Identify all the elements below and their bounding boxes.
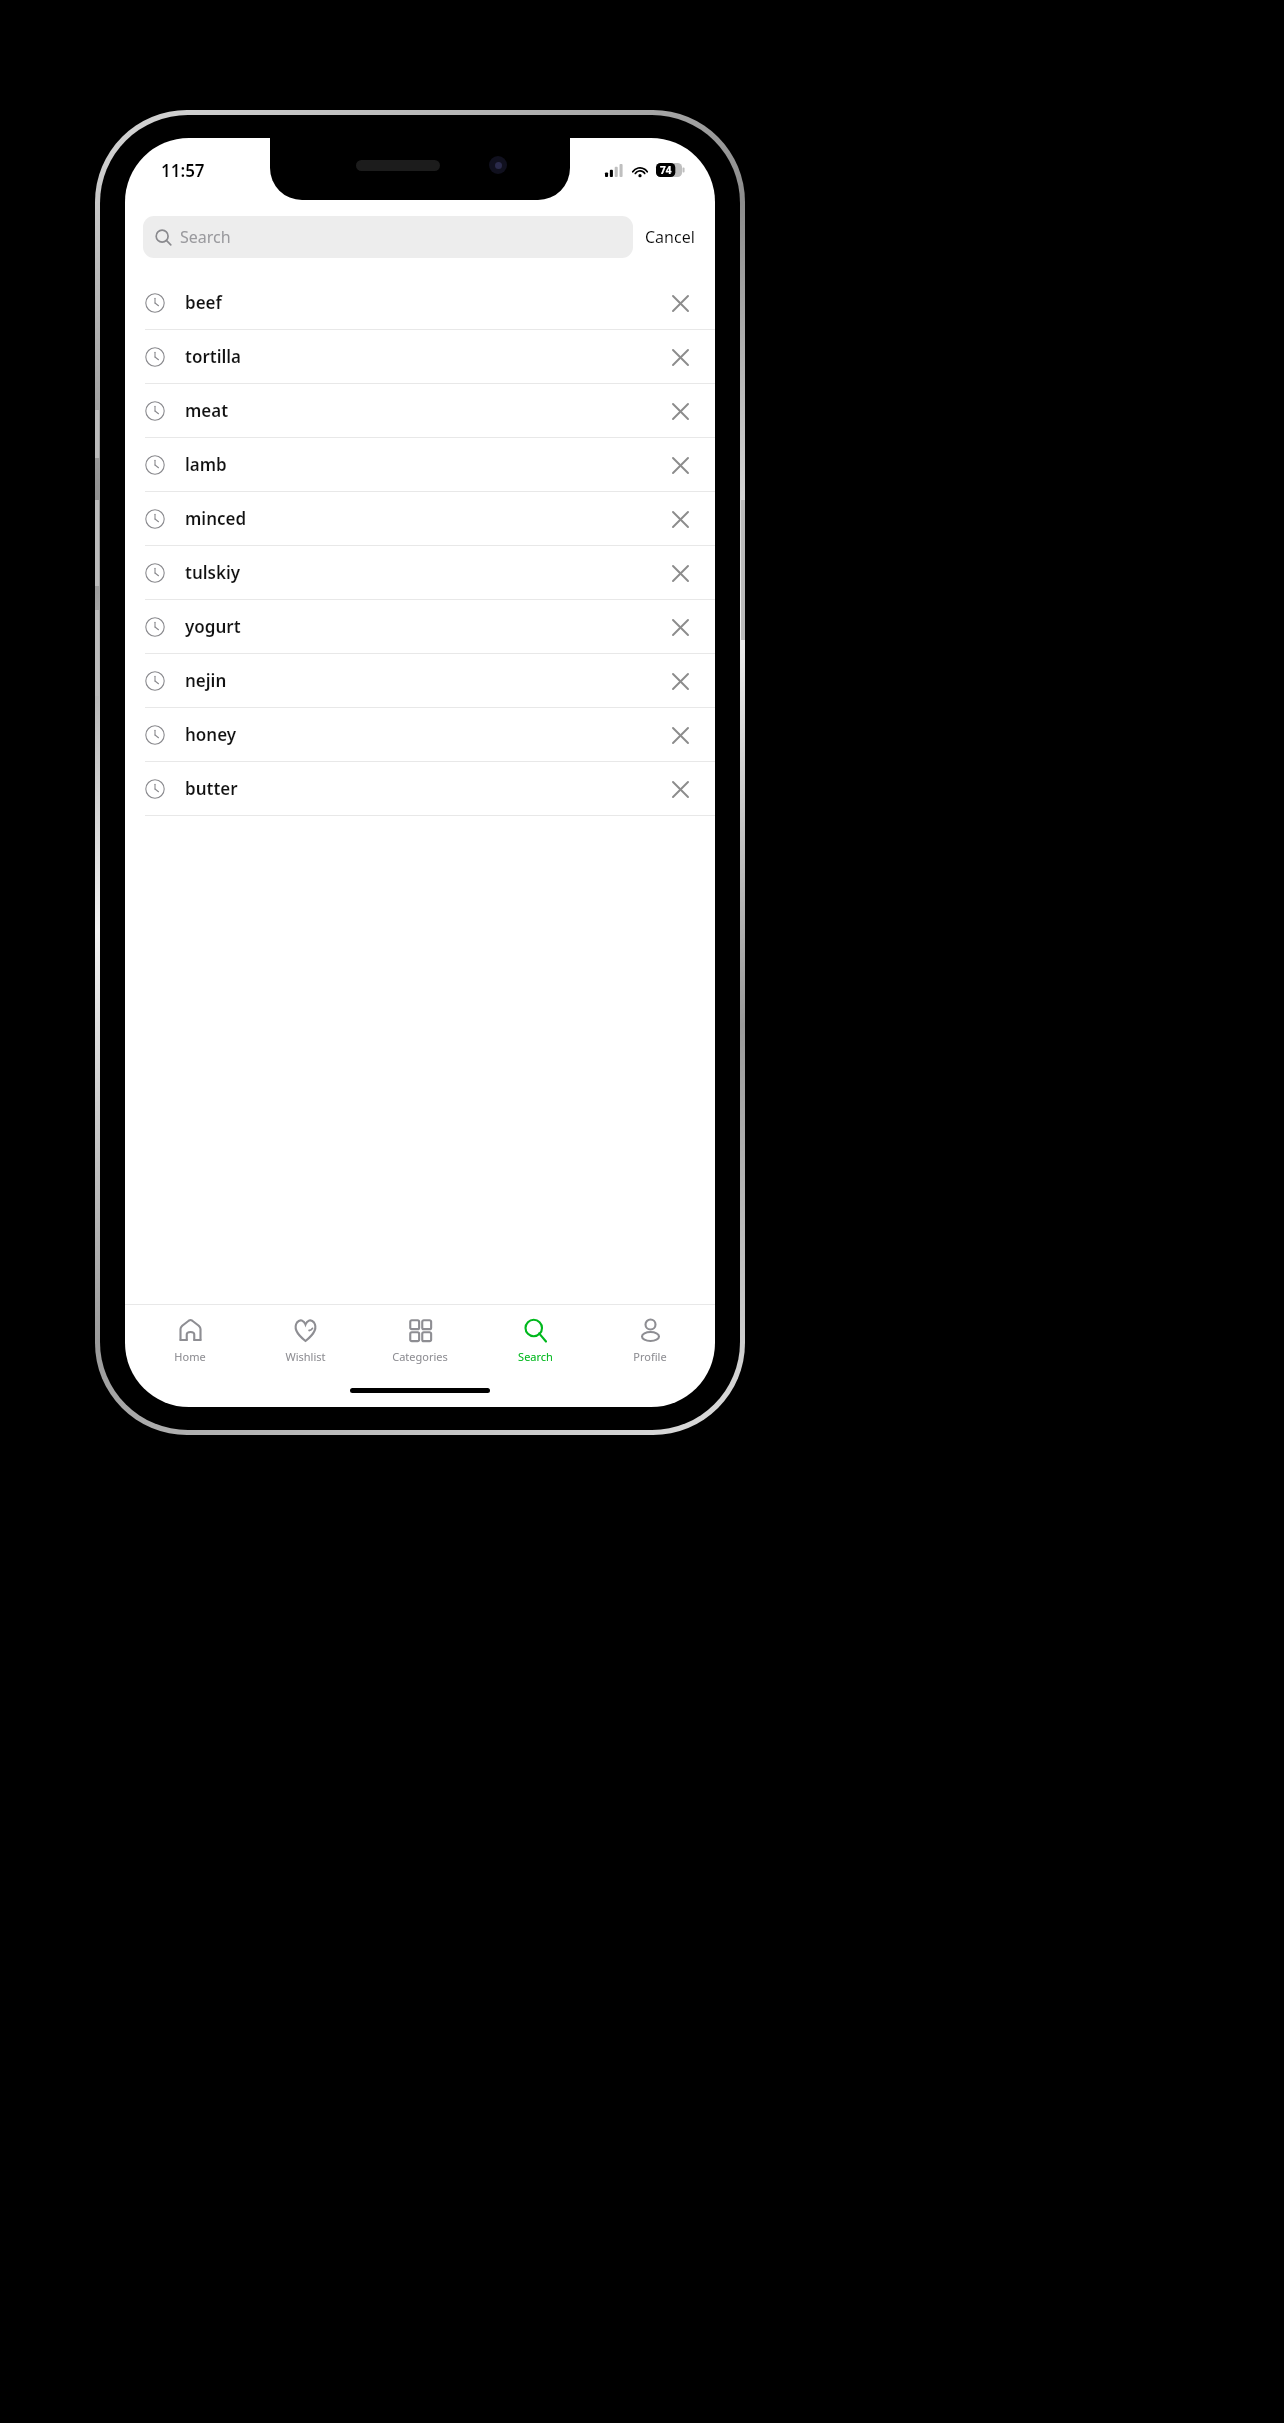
staticText: yogurt — [185, 615, 665, 638]
staticText: Search — [518, 1349, 553, 1364]
button[interactable]: minced — [125, 492, 715, 546]
button[interactable]: beef — [125, 276, 715, 330]
button[interactable]: lamb — [125, 438, 715, 492]
staticText: 11:57 — [161, 159, 205, 182]
button[interactable]: Remove lamb — [665, 450, 695, 480]
button[interactable]: Wishlist — [255, 1305, 355, 1377]
staticText: 74 — [660, 163, 672, 177]
staticText: nejin — [185, 669, 665, 692]
button[interactable]: Cancel — [633, 220, 697, 254]
button[interactable]: Remove honey — [665, 720, 695, 750]
staticText: Home — [174, 1349, 206, 1364]
button[interactable]: Profile — [600, 1305, 700, 1377]
button[interactable]: Home — [140, 1305, 240, 1377]
staticText: Search — [180, 226, 231, 248]
staticText: meat — [185, 399, 665, 422]
button[interactable]: tulskiy — [125, 546, 715, 600]
staticText: butter — [185, 777, 665, 800]
button[interactable]: Remove minced — [665, 504, 695, 534]
button[interactable]: Remove beef — [665, 288, 695, 318]
button[interactable]: Remove butter — [665, 774, 695, 804]
button[interactable]: tortilla — [125, 330, 715, 384]
button[interactable]: Categories — [370, 1305, 470, 1377]
button[interactable]: Remove nejin — [665, 666, 695, 696]
button[interactable]: honey — [125, 708, 715, 762]
button[interactable]: Search — [143, 216, 633, 258]
button[interactable]: meat — [125, 384, 715, 438]
staticText: minced — [185, 507, 665, 530]
button[interactable]: Search — [485, 1305, 585, 1377]
button[interactable]: yogurt — [125, 600, 715, 654]
button[interactable]: Remove meat — [665, 396, 695, 426]
staticText: Profile — [633, 1349, 667, 1364]
staticText: honey — [185, 723, 665, 746]
staticText: lamb — [185, 453, 665, 476]
button[interactable]: butter — [125, 762, 715, 816]
staticText: tortilla — [185, 345, 665, 368]
staticText: tulskiy — [185, 561, 665, 584]
staticText: beef — [185, 291, 665, 314]
staticText: Categories — [392, 1349, 448, 1364]
staticText: Wishlist — [285, 1349, 326, 1364]
button[interactable]: Remove tulskiy — [665, 558, 695, 588]
button[interactable]: Remove tortilla — [665, 342, 695, 372]
button[interactable]: nejin — [125, 654, 715, 708]
staticText: Cancel — [645, 226, 695, 248]
button[interactable]: Remove yogurt — [665, 612, 695, 642]
